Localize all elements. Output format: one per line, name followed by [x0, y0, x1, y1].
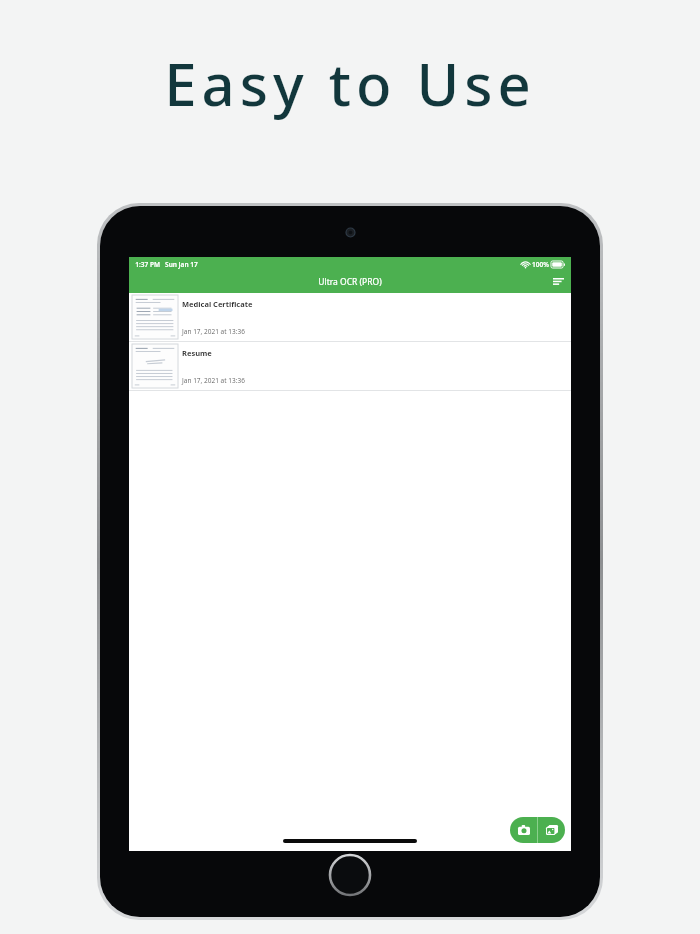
button[interactable]: Take photo: [510, 817, 537, 843]
staticText: Easy to Use: [164, 44, 536, 123]
staticText: Jan 17, 2021 at 13:36: [182, 327, 571, 336]
staticText: 1:37 PM Sun Jan 17: [135, 260, 198, 269]
button[interactable]: Pick from gallery: [538, 817, 565, 843]
staticText: Resume: [182, 348, 571, 358]
staticText: Medical Certificate: [182, 299, 571, 309]
staticText: Ultra OCR (PRO): [318, 276, 382, 288]
staticText: 100%: [532, 260, 549, 269]
staticText: Jan 17, 2021 at 13:36: [182, 376, 571, 385]
button[interactable]: Resume: [129, 342, 571, 390]
button[interactable]: Sort: [549, 273, 567, 291]
button[interactable]: Medical Certificate: [129, 293, 571, 341]
